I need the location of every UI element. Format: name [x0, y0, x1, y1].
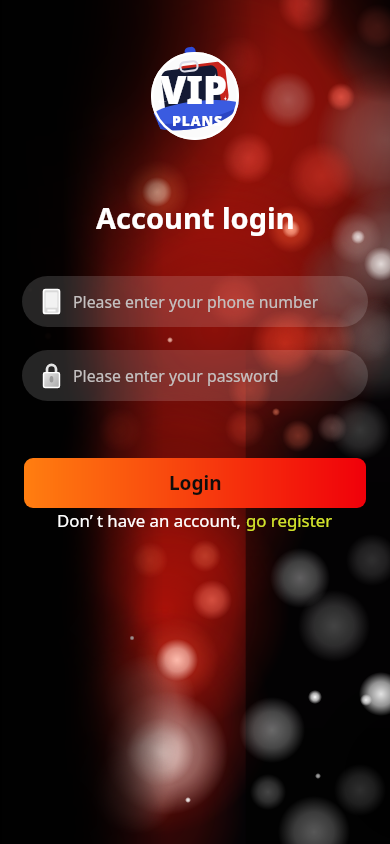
staticText: VIP [160, 63, 228, 115]
staticText: Don’ t have an account, [57, 509, 246, 532]
staticText: Please enter your phone number [73, 291, 319, 313]
button[interactable]: Please enter your phone number [22, 276, 368, 327]
button[interactable]: Login [24, 458, 366, 508]
other: VIP Plans logo [151, 52, 239, 140]
staticText: Login [169, 470, 222, 496]
staticText: Account login [96, 198, 295, 237]
button[interactable]: go register [246, 509, 333, 532]
staticText: Please enter your password [73, 365, 279, 387]
staticText: PLANS [172, 111, 223, 130]
staticText: go register [246, 509, 333, 532]
button[interactable]: Please enter your password [22, 350, 368, 401]
